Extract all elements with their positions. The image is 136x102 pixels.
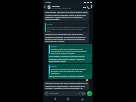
staticText: Claro que si, ahora mismo lo reviso con … xyxy=(47,26,87,32)
staticText: De acuerdo, confirmo la llamada para man… xyxy=(49,55,91,62)
staticText: Muchas gracias por todo quedo entonces a… xyxy=(45,82,88,89)
button[interactable]: Voice message xyxy=(87,91,92,96)
button[interactable]: Back xyxy=(43,5,47,9)
button[interactable]: Daniel xyxy=(48,64,92,79)
staticText: tap here for contact info xyxy=(52,7,72,9)
button[interactable]: Recents xyxy=(80,97,84,101)
staticText: Te envio el enlace de la reunion antes d… xyxy=(51,68,90,74)
button[interactable]: Muchas gracias por todo quedo entonces a… xyxy=(44,81,89,90)
button[interactable]: Voice call xyxy=(86,5,90,9)
button[interactable]: Contact photo xyxy=(47,5,51,9)
staticText: Message xyxy=(49,92,59,95)
button[interactable]: Daniel xyxy=(44,22,89,43)
button[interactable]: Back xyxy=(53,97,57,101)
staticText: Daniel xyxy=(47,23,53,26)
staticText: Perfecto, entonces quedamos asi y lo con… xyxy=(51,48,90,54)
staticText: Gracias por la respuesta me parece bien.… xyxy=(45,33,88,42)
staticText: Daniel xyxy=(51,45,57,48)
staticText: Listo, quedo atento al enlace. Gracias. xyxy=(49,75,85,78)
button[interactable]: Home xyxy=(66,97,70,101)
staticText: Daniel xyxy=(51,65,57,68)
button[interactable]: Daniel xyxy=(48,44,92,63)
button[interactable]: Hola Daniel, disculpa la molestia queria… xyxy=(44,10,89,21)
staticText: 10:28 xyxy=(45,1,51,4)
button[interactable]: More options xyxy=(90,5,93,8)
button[interactable]: Video call xyxy=(82,5,86,9)
staticText: Daniel xyxy=(52,4,60,7)
staticText: Hola Daniel, disculpa la molestia queria… xyxy=(45,11,88,20)
button[interactable]: Message xyxy=(44,91,86,96)
